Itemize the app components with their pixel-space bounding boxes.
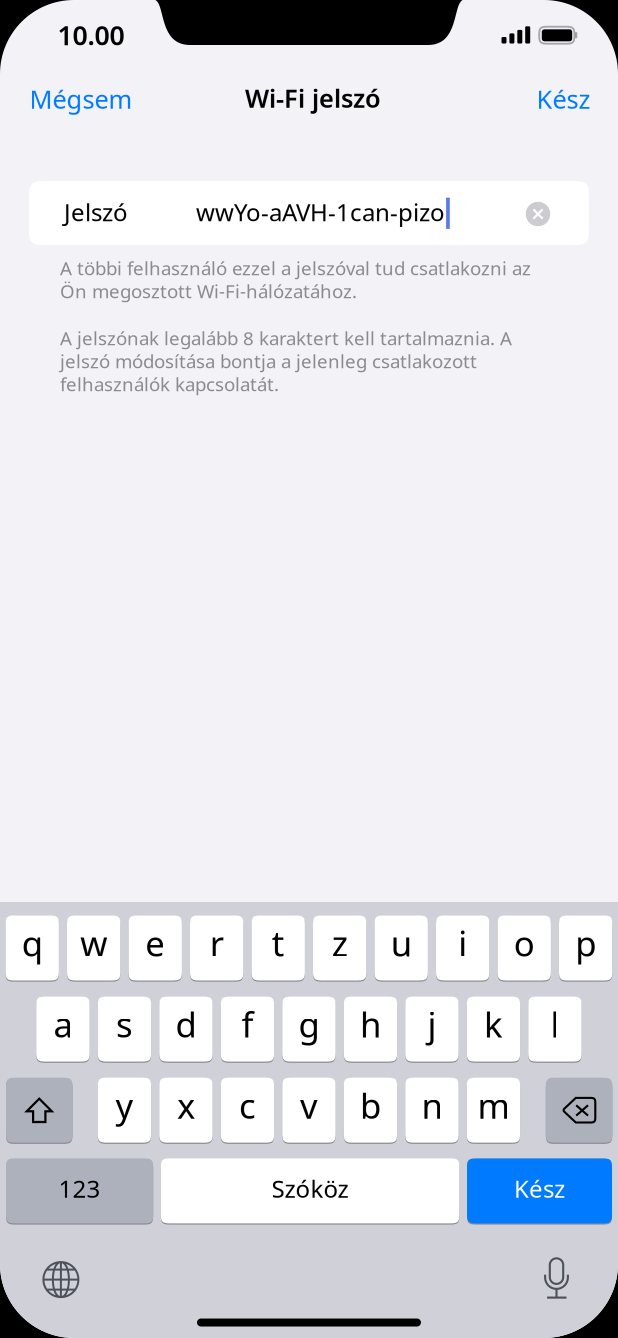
staticText: d bbox=[175, 1001, 196, 1047]
staticText: Szóköz bbox=[272, 1172, 349, 1204]
button[interactable]: Jelszó bbox=[29, 181, 589, 245]
button[interactable]: Delete bbox=[546, 1077, 612, 1144]
button[interactable]: a bbox=[36, 996, 90, 1063]
staticText: Mégsem bbox=[30, 82, 133, 116]
staticText: r bbox=[210, 920, 224, 966]
staticText: p bbox=[575, 920, 596, 966]
staticText: f bbox=[241, 1001, 253, 1047]
staticText: 123 bbox=[59, 1172, 101, 1204]
button[interactable]: g bbox=[282, 996, 336, 1063]
button[interactable]: f bbox=[221, 996, 274, 1063]
button[interactable]: s bbox=[98, 996, 151, 1063]
staticText: n bbox=[421, 1082, 442, 1128]
button[interactable]: x bbox=[159, 1077, 213, 1144]
staticText: t bbox=[272, 920, 285, 966]
button[interactable]: w bbox=[67, 914, 120, 981]
button[interactable]: t bbox=[251, 914, 305, 981]
staticText: x bbox=[177, 1082, 195, 1128]
button[interactable]: p bbox=[559, 914, 612, 981]
button[interactable]: 123 bbox=[6, 1157, 153, 1224]
button[interactable]: q bbox=[5, 914, 59, 981]
button[interactable]: c bbox=[221, 1077, 274, 1144]
staticText: k bbox=[484, 1001, 503, 1047]
staticText: jelszó módosítása bontja a jelenleg csat… bbox=[60, 349, 477, 373]
staticText: a bbox=[53, 1001, 72, 1047]
staticText: Wi-Fi jelszó bbox=[245, 81, 381, 115]
button[interactable]: Shift bbox=[6, 1077, 72, 1144]
button[interactable]: h bbox=[344, 996, 397, 1063]
button[interactable]: v bbox=[282, 1077, 336, 1144]
staticText: w bbox=[80, 920, 107, 966]
button[interactable]: r bbox=[190, 914, 243, 981]
staticText: u bbox=[391, 920, 412, 966]
staticText: q bbox=[22, 920, 43, 966]
staticText: j bbox=[427, 1001, 436, 1047]
staticText: v bbox=[300, 1082, 318, 1128]
staticText: A jelszónak legalább 8 karaktert kell ta… bbox=[60, 326, 512, 350]
staticText: e bbox=[145, 920, 165, 966]
staticText: l bbox=[550, 1001, 559, 1047]
button[interactable]: Dictation bbox=[542, 1256, 571, 1302]
button[interactable]: n bbox=[405, 1077, 459, 1144]
button[interactable]: m bbox=[467, 1077, 520, 1144]
staticText: g bbox=[298, 1001, 319, 1047]
staticText: s bbox=[116, 1001, 133, 1047]
button[interactable]: Clear text bbox=[526, 202, 550, 226]
staticText: 10.00 bbox=[57, 17, 124, 53]
staticText: Kész bbox=[537, 82, 591, 116]
button[interactable]: Next keyboard bbox=[42, 1261, 80, 1299]
button[interactable]: e bbox=[128, 914, 182, 981]
staticText: i bbox=[458, 920, 467, 966]
staticText: Jelszó bbox=[64, 196, 128, 228]
staticText: m bbox=[477, 1082, 509, 1128]
button[interactable]: u bbox=[374, 914, 428, 981]
button[interactable]: d bbox=[159, 996, 213, 1063]
button[interactable]: i bbox=[436, 914, 489, 981]
staticText: Kész bbox=[514, 1172, 565, 1204]
button[interactable]: j bbox=[405, 996, 459, 1063]
staticText: b bbox=[360, 1082, 381, 1128]
staticText: wwYo-aAVH-1can-pizo bbox=[196, 196, 445, 228]
staticText: Ön megosztott Wi-Fi-hálózatához. bbox=[60, 279, 357, 303]
button[interactable]: z bbox=[313, 914, 366, 981]
button[interactable]: Kész bbox=[467, 1157, 612, 1224]
staticText: h bbox=[360, 1001, 381, 1047]
button[interactable]: l bbox=[528, 996, 582, 1063]
staticText: felhasználók kapcsolatát. bbox=[60, 372, 279, 396]
button[interactable]: Mégsem bbox=[30, 67, 180, 131]
button[interactable]: Szóköz bbox=[161, 1157, 459, 1224]
staticText: z bbox=[332, 920, 348, 966]
button[interactable]: k bbox=[467, 996, 520, 1063]
staticText: y bbox=[115, 1082, 133, 1128]
button[interactable]: b bbox=[344, 1077, 397, 1144]
button[interactable]: o bbox=[497, 914, 551, 981]
button[interactable]: Kész bbox=[441, 67, 591, 131]
staticText: c bbox=[239, 1082, 256, 1128]
staticText: A többi felhasználó ezzel a jelszóval tu… bbox=[60, 256, 531, 280]
button[interactable]: y bbox=[98, 1077, 151, 1144]
staticText: o bbox=[514, 920, 535, 966]
